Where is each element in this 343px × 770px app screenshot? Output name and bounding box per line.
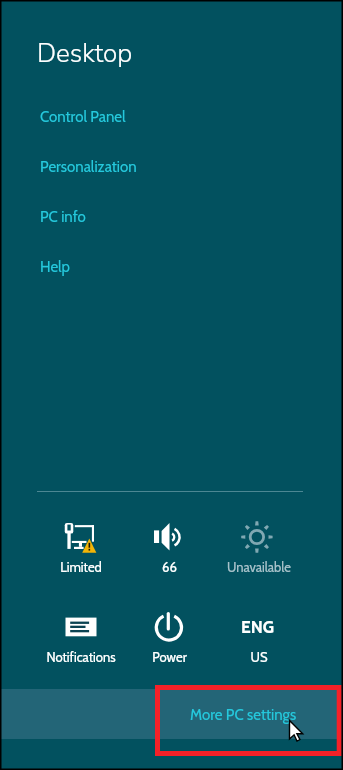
other: Power <box>151 609 187 645</box>
button[interactable]: ENG <box>215 609 303 665</box>
button[interactable]: Network: Limited <box>37 519 125 575</box>
other: Network: Limited <box>63 519 99 555</box>
staticText: Control Panel <box>40 108 126 126</box>
staticText: US <box>250 649 268 665</box>
staticText: Power <box>152 649 187 665</box>
other: Volume 66 <box>151 519 187 555</box>
button[interactable]: Notifications <box>37 609 125 665</box>
staticText: ENG <box>241 617 274 638</box>
staticText: More PC settings <box>190 706 297 724</box>
button[interactable]: Brightness unavailable <box>215 519 303 575</box>
staticText: 66 <box>162 559 177 575</box>
other: Brightness unavailable <box>241 519 277 555</box>
staticText: Help <box>40 258 70 276</box>
staticText: Personalization <box>40 158 137 176</box>
staticText: PC info <box>40 208 86 226</box>
staticText: Limited <box>60 559 102 575</box>
button[interactable]: Help <box>40 258 70 276</box>
button[interactable]: Power <box>125 609 213 665</box>
staticText: Desktop <box>37 36 133 71</box>
button[interactable]: Personalization <box>40 158 137 176</box>
other: Notifications <box>63 609 99 645</box>
staticText: Notifications <box>46 649 116 665</box>
button[interactable]: Control Panel <box>40 108 126 126</box>
button[interactable]: PC info <box>40 208 86 226</box>
button[interactable]: More PC settings <box>0 689 343 739</box>
button[interactable]: Volume 66 <box>125 519 213 575</box>
staticText: Unavailable <box>227 559 291 575</box>
